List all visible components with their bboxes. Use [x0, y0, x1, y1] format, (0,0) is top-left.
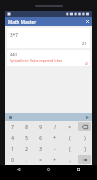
- staticText: 8: [25, 124, 28, 130]
- staticText: 21: [82, 41, 87, 46]
- button[interactable]: 3*7: [7, 28, 90, 48]
- button[interactable]: Enter: [78, 155, 91, 164]
- staticText: ×: [68, 124, 71, 130]
- button[interactable]: Home: [44, 165, 53, 174]
- staticText: ): [84, 135, 86, 141]
- staticText: =: [39, 157, 42, 163]
- staticText: 1: [11, 146, 14, 152]
- staticText: -: [54, 146, 56, 152]
- staticText: 2: [25, 146, 28, 152]
- button[interactable]: ): [78, 133, 91, 142]
- button[interactable]: 0: [6, 155, 18, 164]
- button[interactable]: ,: [63, 155, 76, 164]
- button[interactable]: =: [34, 155, 46, 164]
- staticText: 44(): [10, 52, 17, 57]
- button[interactable]: (: [63, 133, 76, 142]
- staticText: 7: [11, 124, 14, 130]
- staticText: 4: [11, 135, 14, 141]
- staticText: Math Master: [8, 19, 37, 25]
- staticText: 0: [11, 157, 14, 163]
- staticText: ,: [69, 157, 71, 163]
- button[interactable]: 5: [20, 133, 32, 142]
- staticText: *: [53, 135, 56, 141]
- button[interactable]: [: [63, 144, 76, 153]
- staticText: 3: [39, 146, 42, 152]
- button[interactable]: 1: [6, 144, 18, 153]
- staticText: [: [69, 146, 71, 152]
- staticText: 9: [39, 124, 42, 130]
- button[interactable]: 2: [20, 144, 32, 153]
- button[interactable]: /: [48, 122, 61, 131]
- staticText: 4): [85, 62, 88, 66]
- staticText: 3*7: [10, 32, 18, 38]
- staticText: .: [25, 157, 27, 163]
- button[interactable]: 44(): [7, 50, 90, 66]
- staticText: /: [54, 124, 56, 130]
- button[interactable]: ]: [78, 144, 91, 153]
- button[interactable]: 9: [34, 122, 46, 131]
- button[interactable]: -: [48, 144, 61, 153]
- button[interactable]: Backspace: [78, 122, 91, 131]
- staticText: 6: [39, 135, 42, 141]
- button[interactable]: ×: [63, 122, 76, 131]
- staticText: SyntaxError: Value expected (char: [10, 58, 63, 62]
- button[interactable]: *: [48, 133, 61, 142]
- button[interactable]: Back: [14, 165, 23, 174]
- button[interactable]: 4: [6, 133, 18, 142]
- button[interactable]: 3: [34, 144, 46, 153]
- button[interactable]: More suggestions: [84, 114, 90, 120]
- button[interactable]: 7: [6, 122, 18, 131]
- button[interactable]: 8: [20, 122, 32, 131]
- button[interactable]: Math Master: [5, 17, 92, 26]
- staticText: +: [53, 157, 56, 163]
- staticText: ]: [84, 146, 86, 152]
- button[interactable]: Close: [82, 17, 92, 26]
- button[interactable]: +: [48, 155, 61, 164]
- button[interactable]: 6: [34, 133, 46, 142]
- staticText: (: [69, 135, 71, 141]
- button[interactable]: Keyboard settings: [7, 114, 13, 120]
- button[interactable]: Recent apps: [74, 165, 83, 174]
- staticText: 5: [25, 135, 28, 141]
- button[interactable]: .: [20, 155, 32, 164]
